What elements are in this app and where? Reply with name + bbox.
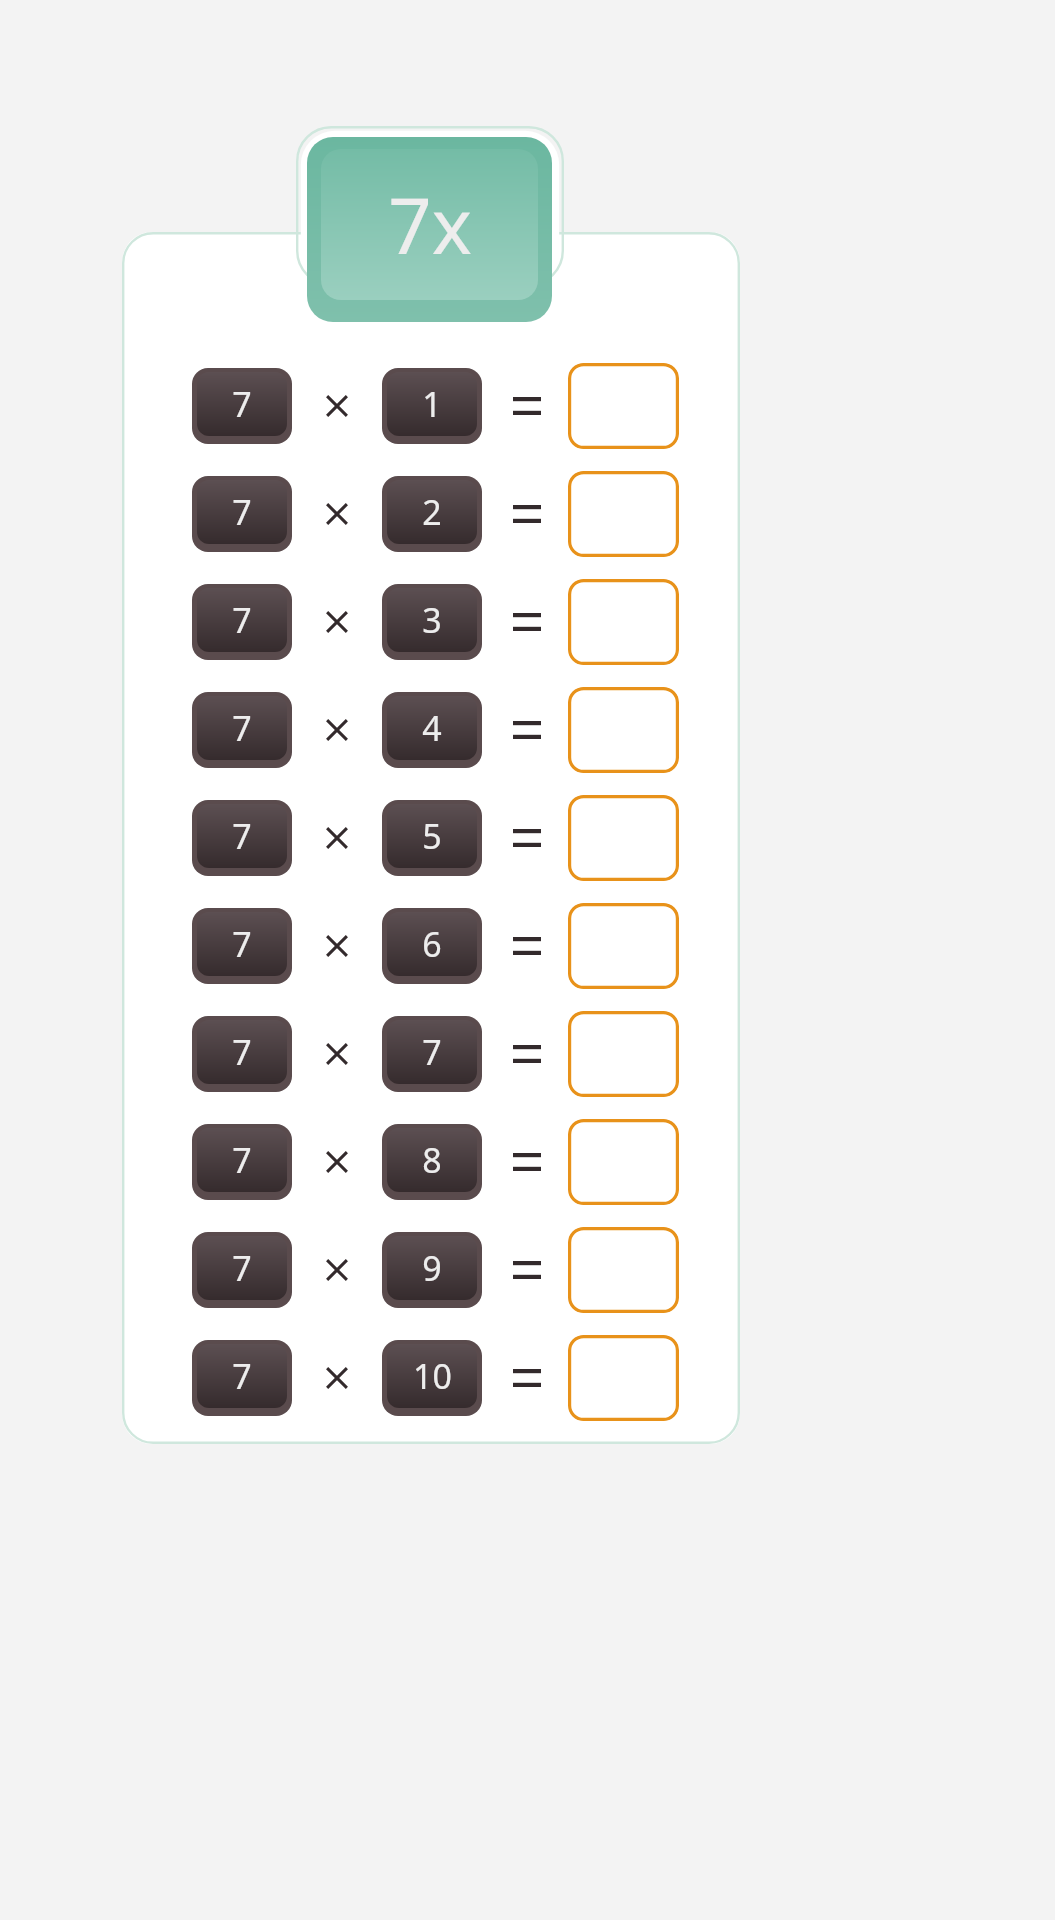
staticText: 7 <box>232 1245 252 1291</box>
button[interactable]: 7 <box>192 1124 292 1200</box>
button[interactable]: 1 <box>382 368 482 444</box>
staticText: 7 <box>232 1137 252 1183</box>
button[interactable]: Answer <box>568 1119 679 1205</box>
staticText: 9 <box>422 1245 442 1291</box>
other: times <box>320 389 354 423</box>
button[interactable]: 4 <box>382 692 482 768</box>
staticText: 7 <box>232 381 252 427</box>
button[interactable]: 8 <box>382 1124 482 1200</box>
button[interactable]: 7 <box>192 908 292 984</box>
button[interactable]: 7 <box>192 800 292 876</box>
other: equals <box>510 929 544 963</box>
other: times <box>320 1361 354 1395</box>
other: equals <box>510 821 544 855</box>
staticText: 7x <box>388 173 472 277</box>
other: equals <box>510 1145 544 1179</box>
other: times <box>320 929 354 963</box>
button[interactable]: Answer <box>568 1227 679 1313</box>
button[interactable]: 7 <box>192 692 292 768</box>
button[interactable]: Answer <box>568 1335 679 1421</box>
button[interactable]: 7 <box>382 1016 482 1092</box>
staticText: 3 <box>422 597 442 643</box>
staticText: 7 <box>232 705 252 751</box>
staticText: 7 <box>232 813 252 859</box>
other: times <box>320 605 354 639</box>
staticText: 5 <box>422 813 442 859</box>
button[interactable]: 7 <box>192 1016 292 1092</box>
other: equals <box>510 497 544 531</box>
staticText: 7 <box>232 1353 252 1399</box>
other: times <box>320 497 354 531</box>
button[interactable]: 6 <box>382 908 482 984</box>
button[interactable]: 7 <box>192 1232 292 1308</box>
staticText: 10 <box>413 1353 452 1399</box>
staticText: 7 <box>232 1029 252 1075</box>
staticText: 2 <box>422 489 442 535</box>
button[interactable]: Answer <box>568 903 679 989</box>
other: times <box>320 821 354 855</box>
staticText: 4 <box>422 705 442 751</box>
staticText: 8 <box>422 1137 442 1183</box>
button[interactable]: 7x <box>307 137 552 322</box>
other: equals <box>510 713 544 747</box>
staticText: 6 <box>422 921 442 967</box>
staticText: 7 <box>232 597 252 643</box>
other: equals <box>510 1037 544 1071</box>
button[interactable]: Answer <box>568 579 679 665</box>
button[interactable]: 3 <box>382 584 482 660</box>
button[interactable]: 9 <box>382 1232 482 1308</box>
button[interactable]: 2 <box>382 476 482 552</box>
button[interactable]: Answer <box>568 471 679 557</box>
button[interactable]: 5 <box>382 800 482 876</box>
button[interactable]: 7 <box>192 476 292 552</box>
other: times <box>320 1253 354 1287</box>
staticText: 7 <box>232 921 252 967</box>
button[interactable]: Answer <box>568 363 679 449</box>
staticText: 7 <box>232 489 252 535</box>
button[interactable]: 7 <box>192 368 292 444</box>
button[interactable]: 7 <box>192 1340 292 1416</box>
other: times <box>320 1145 354 1179</box>
other: times <box>320 713 354 747</box>
button[interactable]: Answer <box>568 795 679 881</box>
button[interactable]: 7 <box>192 584 292 660</box>
staticText: 7 <box>422 1029 442 1075</box>
button[interactable]: 10 <box>382 1340 482 1416</box>
button[interactable]: Answer <box>568 1011 679 1097</box>
other: equals <box>510 1361 544 1395</box>
button[interactable]: Answer <box>568 687 679 773</box>
other: equals <box>510 389 544 423</box>
other: equals <box>510 605 544 639</box>
other: times <box>320 1037 354 1071</box>
staticText: 1 <box>422 381 442 427</box>
other: equals <box>510 1253 544 1287</box>
